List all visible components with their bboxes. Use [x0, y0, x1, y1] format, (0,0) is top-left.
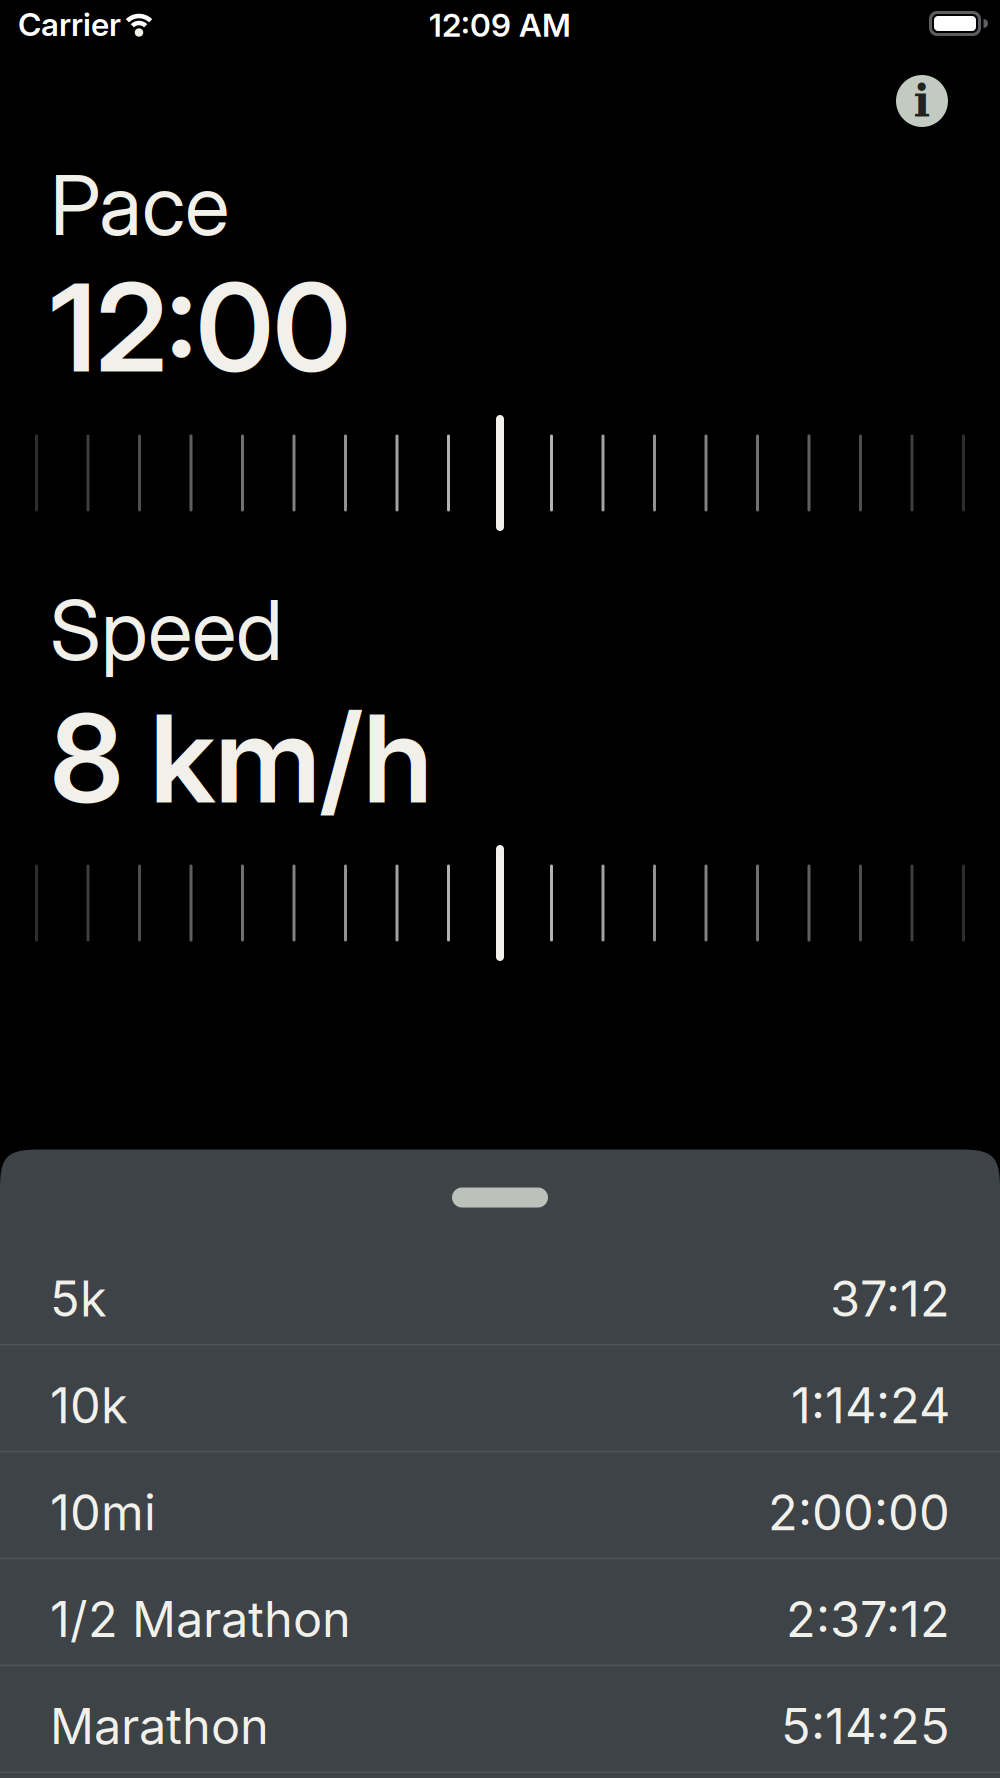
- staticText: 12:00: [50, 254, 350, 401]
- button[interactable]: 1/2 Marathon: [0, 1559, 1000, 1666]
- staticText: 2:37:12: [786, 1590, 950, 1649]
- staticText: 1:14:24: [791, 1376, 950, 1435]
- staticText: 10mi: [50, 1483, 156, 1542]
- staticText: 10k: [50, 1376, 128, 1435]
- staticText: 12:09 AM: [429, 6, 571, 44]
- staticText: 5:14:25: [781, 1697, 950, 1756]
- button[interactable]: Marathon: [0, 1666, 1000, 1773]
- staticText: Speed: [50, 580, 283, 680]
- staticText: Carrier: [18, 5, 121, 44]
- button[interactable]: 10mi: [0, 1452, 1000, 1559]
- staticText: 37:12: [830, 1269, 950, 1328]
- button[interactable]: Info: [896, 75, 948, 127]
- staticText: 1/2 Marathon: [50, 1590, 351, 1649]
- staticText: 8 km/h: [50, 685, 432, 832]
- staticText: 2:00:00: [768, 1483, 950, 1542]
- button[interactable]: 10k: [0, 1345, 1000, 1452]
- button[interactable]: 5k: [0, 1238, 1000, 1345]
- staticText: Pace: [50, 155, 229, 255]
- staticText: i: [913, 75, 930, 127]
- staticText: 5k: [50, 1269, 107, 1328]
- staticText: Marathon: [50, 1697, 269, 1756]
